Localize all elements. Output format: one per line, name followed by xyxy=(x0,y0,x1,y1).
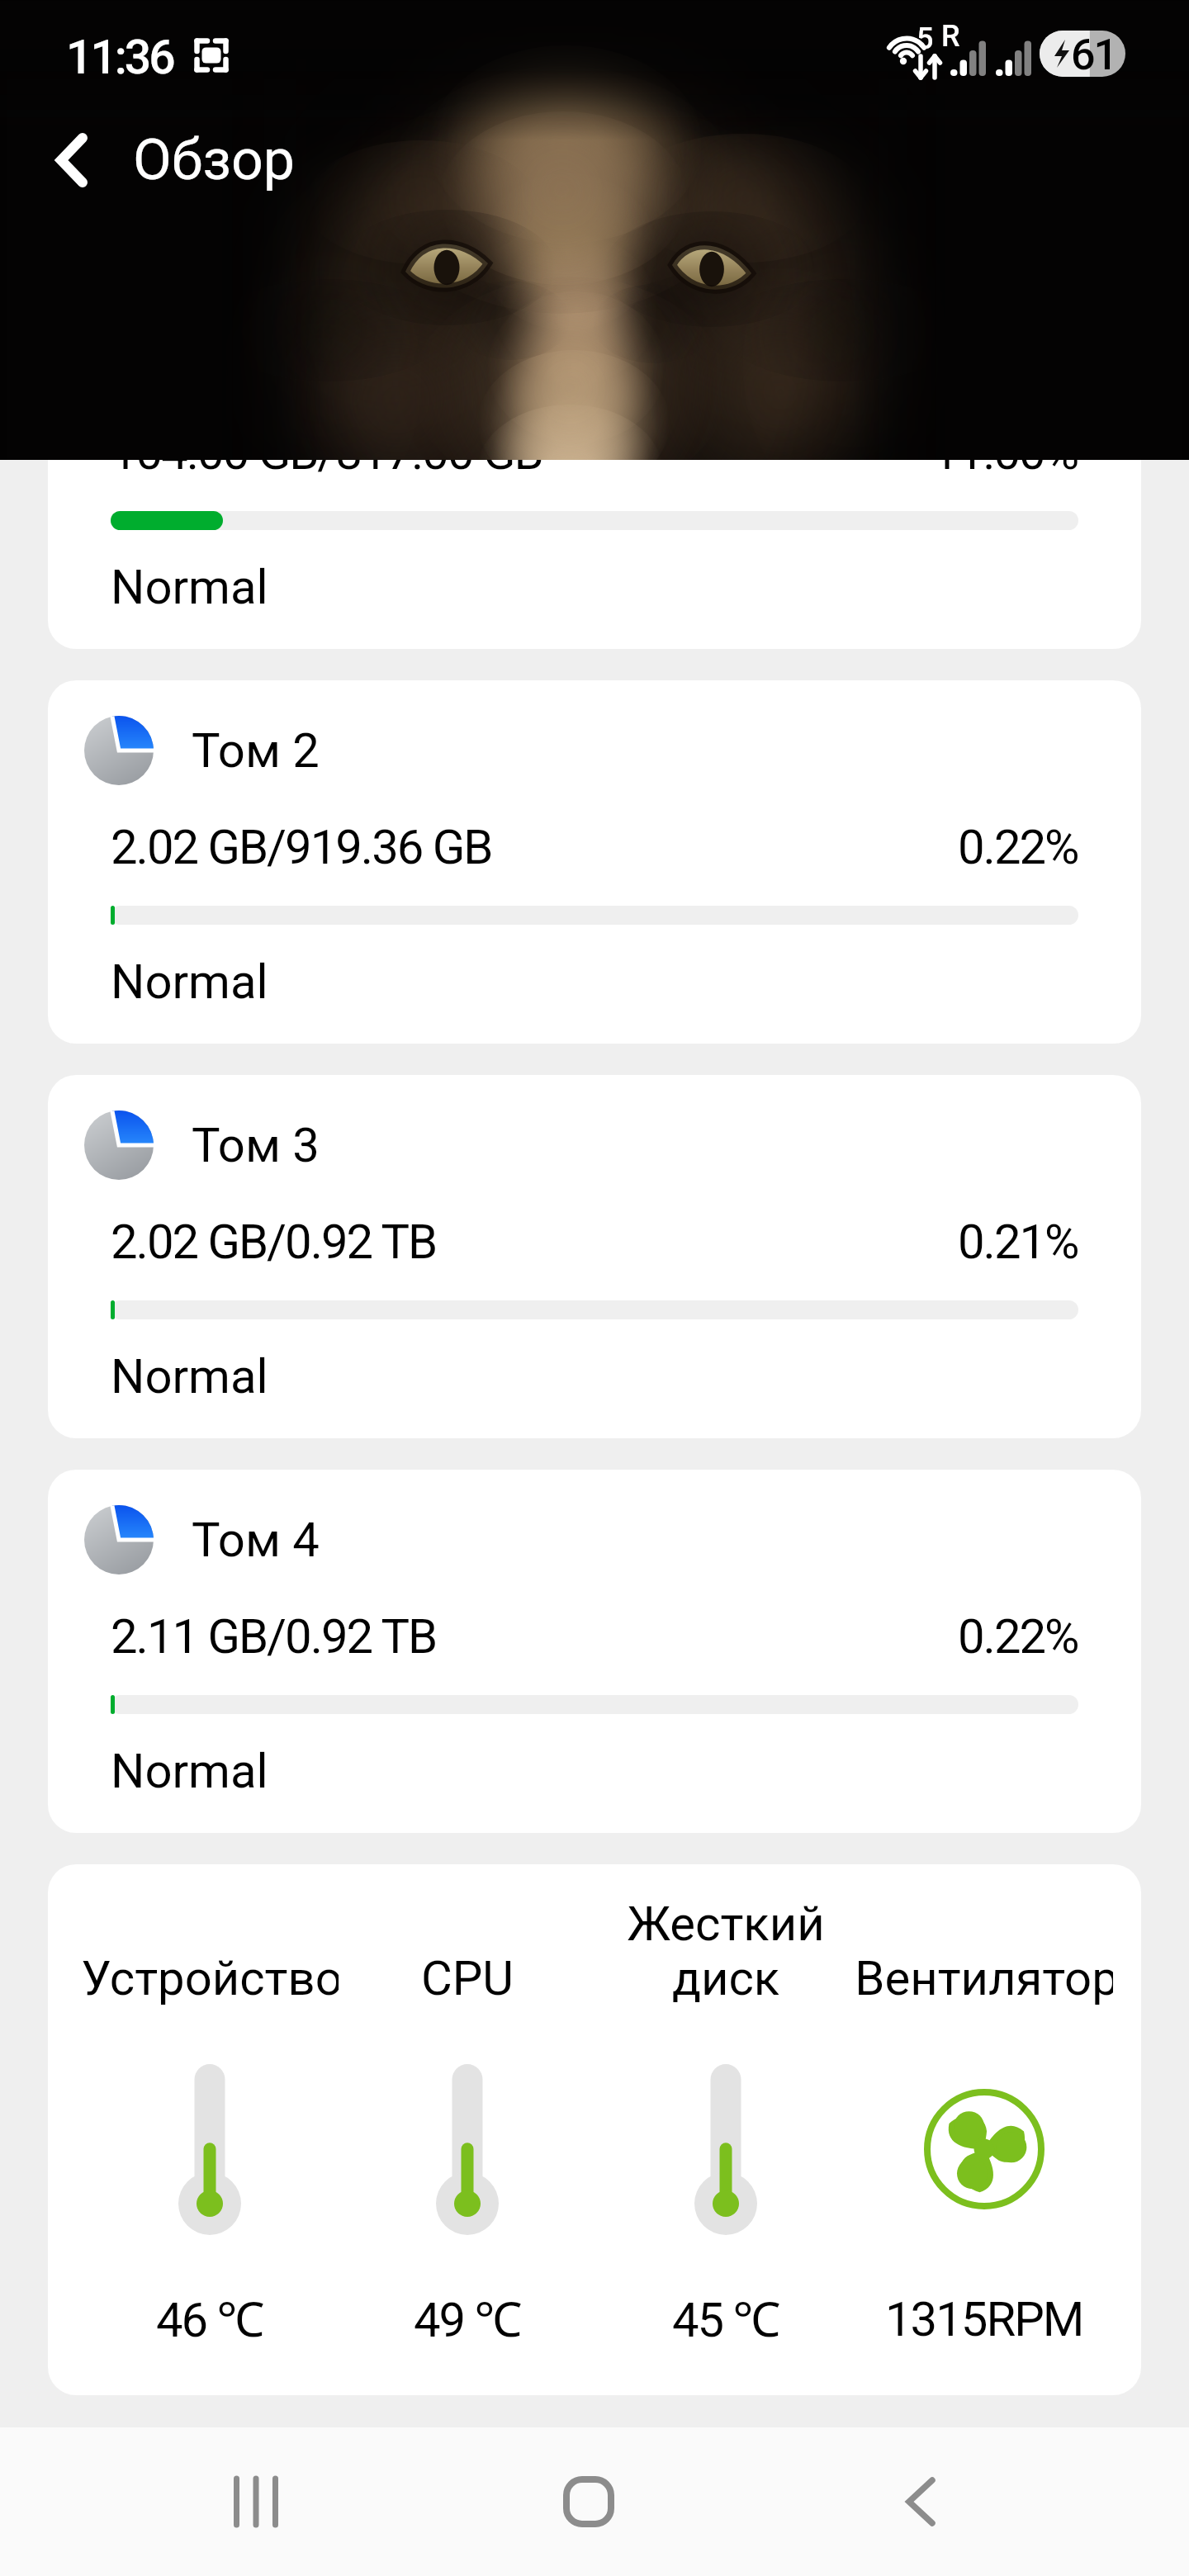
staticText: 0.22% xyxy=(958,1608,1078,1664)
button[interactable]: Том 4 xyxy=(48,1470,1141,1833)
staticText: R xyxy=(941,19,960,54)
staticText: 104.00 GB/817.00 GB xyxy=(111,460,542,481)
staticText: Устройство xyxy=(81,1950,339,2006)
staticText: Обзор xyxy=(133,127,295,193)
staticText: 0.22% xyxy=(958,819,1078,875)
button[interactable]: Том 2 xyxy=(48,680,1141,1044)
button[interactable]: Главный экран xyxy=(465,2427,713,2576)
button[interactable]: Назад xyxy=(797,2427,1045,2576)
staticText: 5 xyxy=(917,21,934,56)
staticText: 11:36 xyxy=(66,30,173,85)
staticText: 46 ℃ xyxy=(156,2285,263,2351)
button[interactable]: Том 1 xyxy=(48,460,1141,649)
staticText: Normal xyxy=(111,559,268,615)
staticText: Normal xyxy=(111,1743,268,1799)
staticText: Normal xyxy=(111,954,268,1010)
staticText: CPU xyxy=(421,1950,514,2006)
button[interactable]: Устройство xyxy=(48,1864,1141,2395)
staticText: Том 4 xyxy=(192,1512,320,1568)
staticText: 45 ℃ xyxy=(672,2285,779,2351)
staticText: 2.11 GB/0.92 TB xyxy=(111,1608,437,1664)
staticText: 1315RPM xyxy=(885,2291,1083,2347)
button[interactable]: Назад xyxy=(31,119,113,201)
staticText: Том 2 xyxy=(192,722,320,779)
button[interactable]: Недавние приложения xyxy=(132,2427,380,2576)
staticText: Вентилятор xyxy=(855,1950,1113,2006)
staticText: 0.21% xyxy=(958,1214,1078,1270)
staticText: 49 ℃ xyxy=(414,2285,521,2351)
button[interactable]: Том 3 xyxy=(48,1075,1141,1438)
staticText: Normal xyxy=(111,1348,268,1404)
staticText: 61 xyxy=(1071,30,1117,80)
staticText: Жесткий диск xyxy=(627,1896,825,2006)
staticText: Том 3 xyxy=(192,1117,320,1173)
staticText: 11.00% xyxy=(932,460,1078,481)
staticText: 2.02 GB/919.36 GB xyxy=(111,819,492,875)
staticText: 2.02 GB/0.92 TB xyxy=(111,1214,437,1270)
